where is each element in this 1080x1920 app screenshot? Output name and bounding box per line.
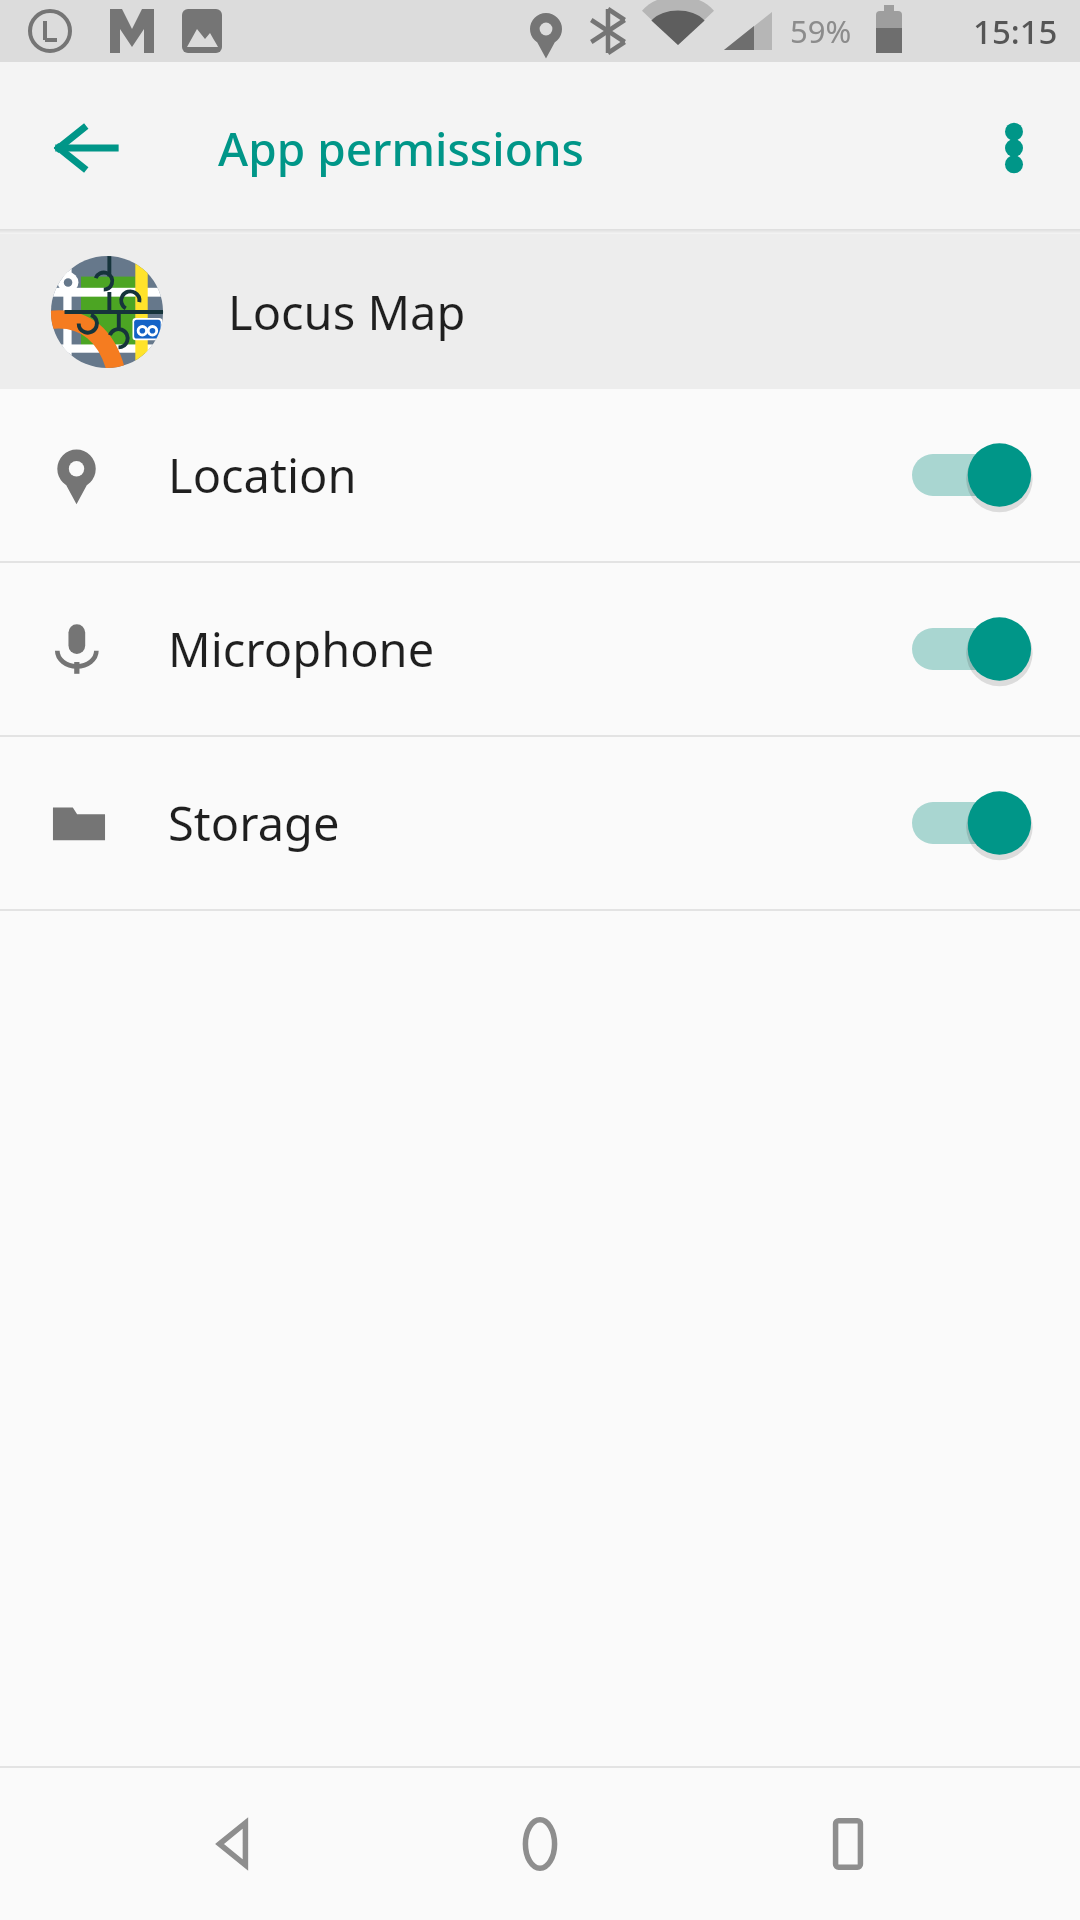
button[interactable]: Back	[32, 94, 140, 202]
button[interactable]: More options	[966, 100, 1062, 196]
button[interactable]: Locus Map	[0, 234, 1080, 389]
staticText: Locus Map	[228, 280, 466, 344]
button[interactable]: Storage permission toggle	[890, 768, 1030, 878]
staticText: 59%	[790, 10, 852, 52]
staticText: Storage	[168, 791, 890, 855]
button[interactable]: Microphone	[0, 563, 1080, 735]
staticText: 15:15	[973, 9, 1058, 54]
button[interactable]: Location	[0, 389, 1080, 561]
button[interactable]: Storage	[0, 737, 1080, 909]
staticText: Microphone	[168, 617, 890, 681]
staticText: Location	[168, 443, 890, 507]
button[interactable]: Back	[158, 1769, 308, 1919]
staticText: App permissions	[218, 117, 584, 180]
button[interactable]: Home	[465, 1769, 615, 1919]
button[interactable]: Recent apps	[773, 1769, 923, 1919]
button[interactable]: Location permission toggle	[890, 420, 1030, 530]
button[interactable]: Microphone permission toggle	[890, 594, 1030, 704]
